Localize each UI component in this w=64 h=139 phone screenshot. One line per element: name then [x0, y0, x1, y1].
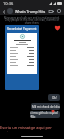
staticText: Whats Trump Hits: [15, 9, 46, 14]
button[interactable]: Back: [0, 8, 7, 15]
staticText: Messages and calls are end-to-end encryp…: [2, 16, 62, 25]
staticText: Ok!: [52, 96, 57, 100]
button[interactable]: Heart sticker: [54, 24, 61, 31]
button[interactable]: Video call: [47, 7, 55, 15]
button[interactable]: Si ma github capital iMo: [30, 111, 60, 118]
button[interactable]: Recordatori Pagament: [5, 25, 39, 90]
button[interactable]: Escriu un missatge aqui per enviar: [0, 125, 64, 132]
button[interactable]: Call: [55, 7, 63, 15]
staticText: Recordatori Pagament: [7, 27, 37, 31]
button[interactable]: Ok!: [48, 94, 60, 101]
staticText: Escriu un missatge aqui per enviar: [0, 125, 64, 132]
staticText: Mil mi check del dia: [32, 105, 60, 109]
staticText: Si ma github capital iMo: [30, 111, 60, 118]
staticText: 10:36: [3, 1, 14, 6]
button[interactable]: Mil mi check del dia: [31, 103, 60, 110]
